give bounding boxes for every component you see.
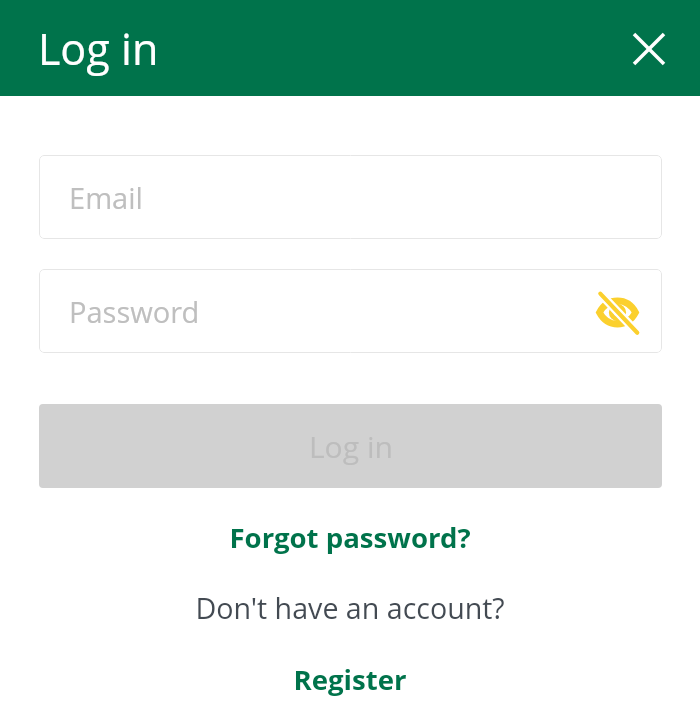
button[interactable]: Register — [293, 660, 407, 698]
staticText: Email — [69, 178, 143, 217]
button[interactable]: Forgot password? — [229, 518, 471, 556]
button[interactable]: Email — [39, 155, 662, 239]
staticText: Log in — [38, 19, 159, 78]
staticText: Password — [69, 292, 200, 331]
button[interactable]: Close — [619, 19, 679, 79]
button[interactable]: Password — [39, 269, 662, 353]
button[interactable]: Show password — [587, 282, 647, 342]
staticText: Don't have an account? — [195, 588, 505, 627]
staticText: Log in — [309, 426, 393, 467]
